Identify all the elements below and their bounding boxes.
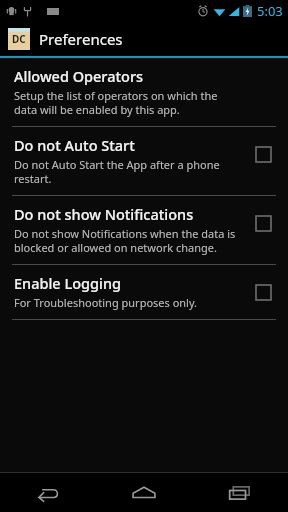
staticText: Allowed Operators [14, 66, 144, 86]
button[interactable]: Allowed Operators [0, 58, 288, 126]
staticText: Setup the list of operators on which the… [14, 88, 240, 117]
button[interactable]: Do not show Notifications [0, 196, 288, 264]
button[interactable]: Home [96, 473, 192, 512]
staticText: Preferences [39, 29, 123, 49]
button[interactable]: Do not Auto Start [248, 139, 278, 169]
button[interactable]: Back [0, 473, 96, 512]
button[interactable]: Do not Auto Start [0, 127, 288, 195]
button[interactable]: Enable Logging [248, 277, 278, 307]
staticText: For Troubleshooting purposes only. [14, 295, 198, 310]
staticText: 5:03 [257, 2, 283, 20]
button[interactable]: Recent apps [192, 473, 288, 512]
staticText: Do not Auto Start the App after a phone … [14, 157, 240, 186]
button[interactable]: Do not show Notifications [248, 208, 278, 238]
staticText: DC [12, 32, 26, 46]
staticText: Do not show Notifications when the data … [14, 226, 240, 255]
staticText: Do not show Notifications [14, 204, 194, 224]
staticText: Enable Logging [14, 273, 122, 293]
staticText: Do not Auto Start [14, 135, 135, 155]
button[interactable]: DC [0, 22, 288, 56]
button[interactable]: Enable Logging [0, 265, 288, 319]
